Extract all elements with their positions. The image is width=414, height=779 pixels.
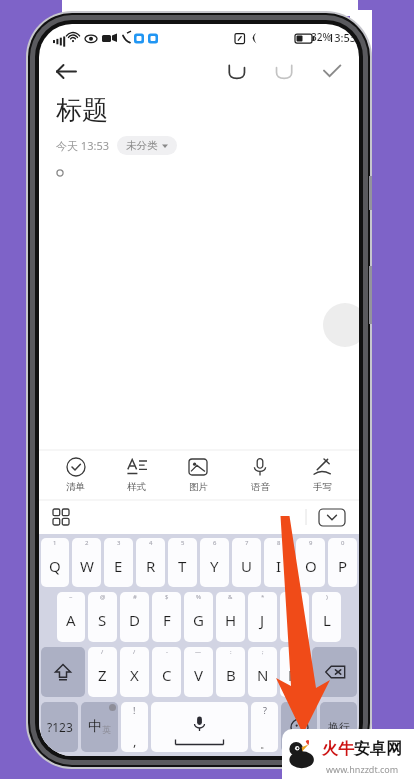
- staticText: F: [163, 610, 171, 630]
- button[interactable]: Keyboard panel: [45, 501, 77, 533]
- button[interactable]: Redo: [267, 54, 301, 88]
- staticText: E: [114, 556, 123, 576]
- staticText: Y: [210, 556, 219, 576]
- staticText: #: [133, 593, 137, 601]
- staticText: B: [226, 665, 236, 685]
- button[interactable]: 图片: [167, 450, 229, 500]
- staticText: 4: [149, 539, 153, 547]
- staticText: ): [326, 593, 328, 601]
- button[interactable]: 5: [168, 538, 197, 587]
- button[interactable]: ": [280, 647, 309, 697]
- staticText: 7: [245, 539, 249, 547]
- staticText: D: [129, 610, 140, 630]
- staticText: S: [98, 610, 107, 630]
- button[interactable]: $: [152, 592, 181, 642]
- button[interactable]: Back: [47, 53, 83, 89]
- staticText: J: [260, 610, 265, 630]
- staticText: 9: [309, 539, 313, 547]
- button[interactable]: AI assistant: [323, 303, 359, 347]
- staticText: X: [130, 665, 139, 685]
- staticText: 清单: [66, 481, 85, 493]
- staticText: O: [305, 556, 317, 576]
- staticText: 样式: [127, 481, 146, 493]
- staticText: 32%: [311, 30, 331, 44]
- staticText: 6: [213, 539, 217, 547]
- button[interactable]: 4: [136, 538, 165, 587]
- button[interactable]: 手写: [291, 450, 353, 500]
- button[interactable]: —: [184, 647, 213, 697]
- staticText: ~: [69, 593, 73, 601]
- staticText: 未分类: [126, 139, 158, 152]
- button[interactable]: 1: [41, 538, 69, 587]
- button[interactable]: &: [216, 592, 245, 642]
- button[interactable]: Space, voice input: [151, 702, 248, 752]
- staticText: 安卓网: [354, 739, 402, 759]
- button[interactable]: !: [121, 702, 148, 752]
- staticText: R: [146, 556, 156, 576]
- button[interactable]: 6: [200, 538, 229, 587]
- button[interactable]: 9: [296, 538, 325, 587]
- button[interactable]: Emoji: [281, 702, 317, 752]
- button[interactable]: 3: [104, 538, 133, 587]
- staticText: 火牛: [322, 739, 354, 759]
- staticText: 图片: [189, 481, 208, 493]
- button[interactable]: ?: [251, 702, 278, 752]
- staticText: 。: [260, 738, 270, 751]
- staticText: H: [225, 610, 237, 630]
- button[interactable]: %: [184, 592, 213, 642]
- button[interactable]: 语音: [229, 450, 291, 500]
- button[interactable]: 中: [81, 702, 118, 752]
- staticText: 0: [341, 539, 345, 547]
- button[interactable]: ~: [57, 592, 85, 642]
- staticText: 2: [85, 539, 89, 547]
- button[interactable]: 清单: [45, 450, 106, 500]
- staticText: T: [178, 556, 187, 576]
- staticText: N: [257, 665, 269, 685]
- button[interactable]: 0: [328, 538, 357, 587]
- button[interactable]: ): [312, 592, 341, 642]
- staticText: V: [194, 665, 204, 685]
- staticText: !: [133, 704, 136, 716]
- button[interactable]: 换行: [320, 702, 357, 752]
- button[interactable]: Collapse keyboard: [315, 505, 349, 529]
- button[interactable]: Done: [315, 54, 349, 88]
- button[interactable]: #: [120, 592, 149, 642]
- staticText: $: [165, 593, 169, 601]
- staticText: ?: [263, 704, 267, 716]
- button[interactable]: @: [88, 592, 117, 642]
- staticText: L: [323, 610, 331, 630]
- button[interactable]: (: [280, 592, 309, 642]
- button[interactable]: Shift: [41, 647, 85, 697]
- staticText: P: [338, 556, 348, 576]
- staticText: M: [288, 665, 302, 685]
- button[interactable]: /: [88, 647, 117, 697]
- button[interactable]: -: [152, 647, 181, 697]
- staticText: 中: [88, 718, 102, 736]
- staticText: :: [230, 648, 232, 656]
- staticText: 标题: [56, 94, 108, 127]
- button[interactable]: ?123: [41, 702, 78, 752]
- button[interactable]: 样式: [106, 450, 167, 500]
- staticText: 3: [117, 539, 121, 547]
- button[interactable]: Undo: [219, 54, 253, 88]
- button[interactable]: ;: [248, 647, 277, 697]
- button[interactable]: 8: [264, 538, 293, 587]
- staticText: 语音: [251, 481, 270, 493]
- button[interactable]: 7: [232, 538, 261, 587]
- staticText: @: [100, 593, 106, 601]
- staticText: 5: [181, 539, 185, 547]
- staticText: —: [195, 648, 202, 656]
- button[interactable]: *: [248, 592, 277, 642]
- staticText: 手写: [313, 481, 332, 493]
- staticText: /: [101, 648, 104, 656]
- button[interactable]: :: [216, 647, 245, 697]
- button[interactable]: 未分类: [117, 136, 177, 155]
- staticText: 今天 13:53: [56, 138, 109, 153]
- button[interactable]: 2: [72, 538, 101, 587]
- button[interactable]: /: [120, 647, 149, 697]
- staticText: www.hnzzdt.com: [326, 763, 399, 775]
- button[interactable]: Delete: [312, 647, 357, 697]
- staticText: I: [276, 556, 282, 576]
